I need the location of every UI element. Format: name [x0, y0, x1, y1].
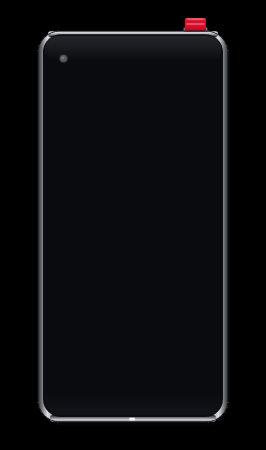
button[interactable]: Phone display assembly product photo: [0, 0, 266, 450]
